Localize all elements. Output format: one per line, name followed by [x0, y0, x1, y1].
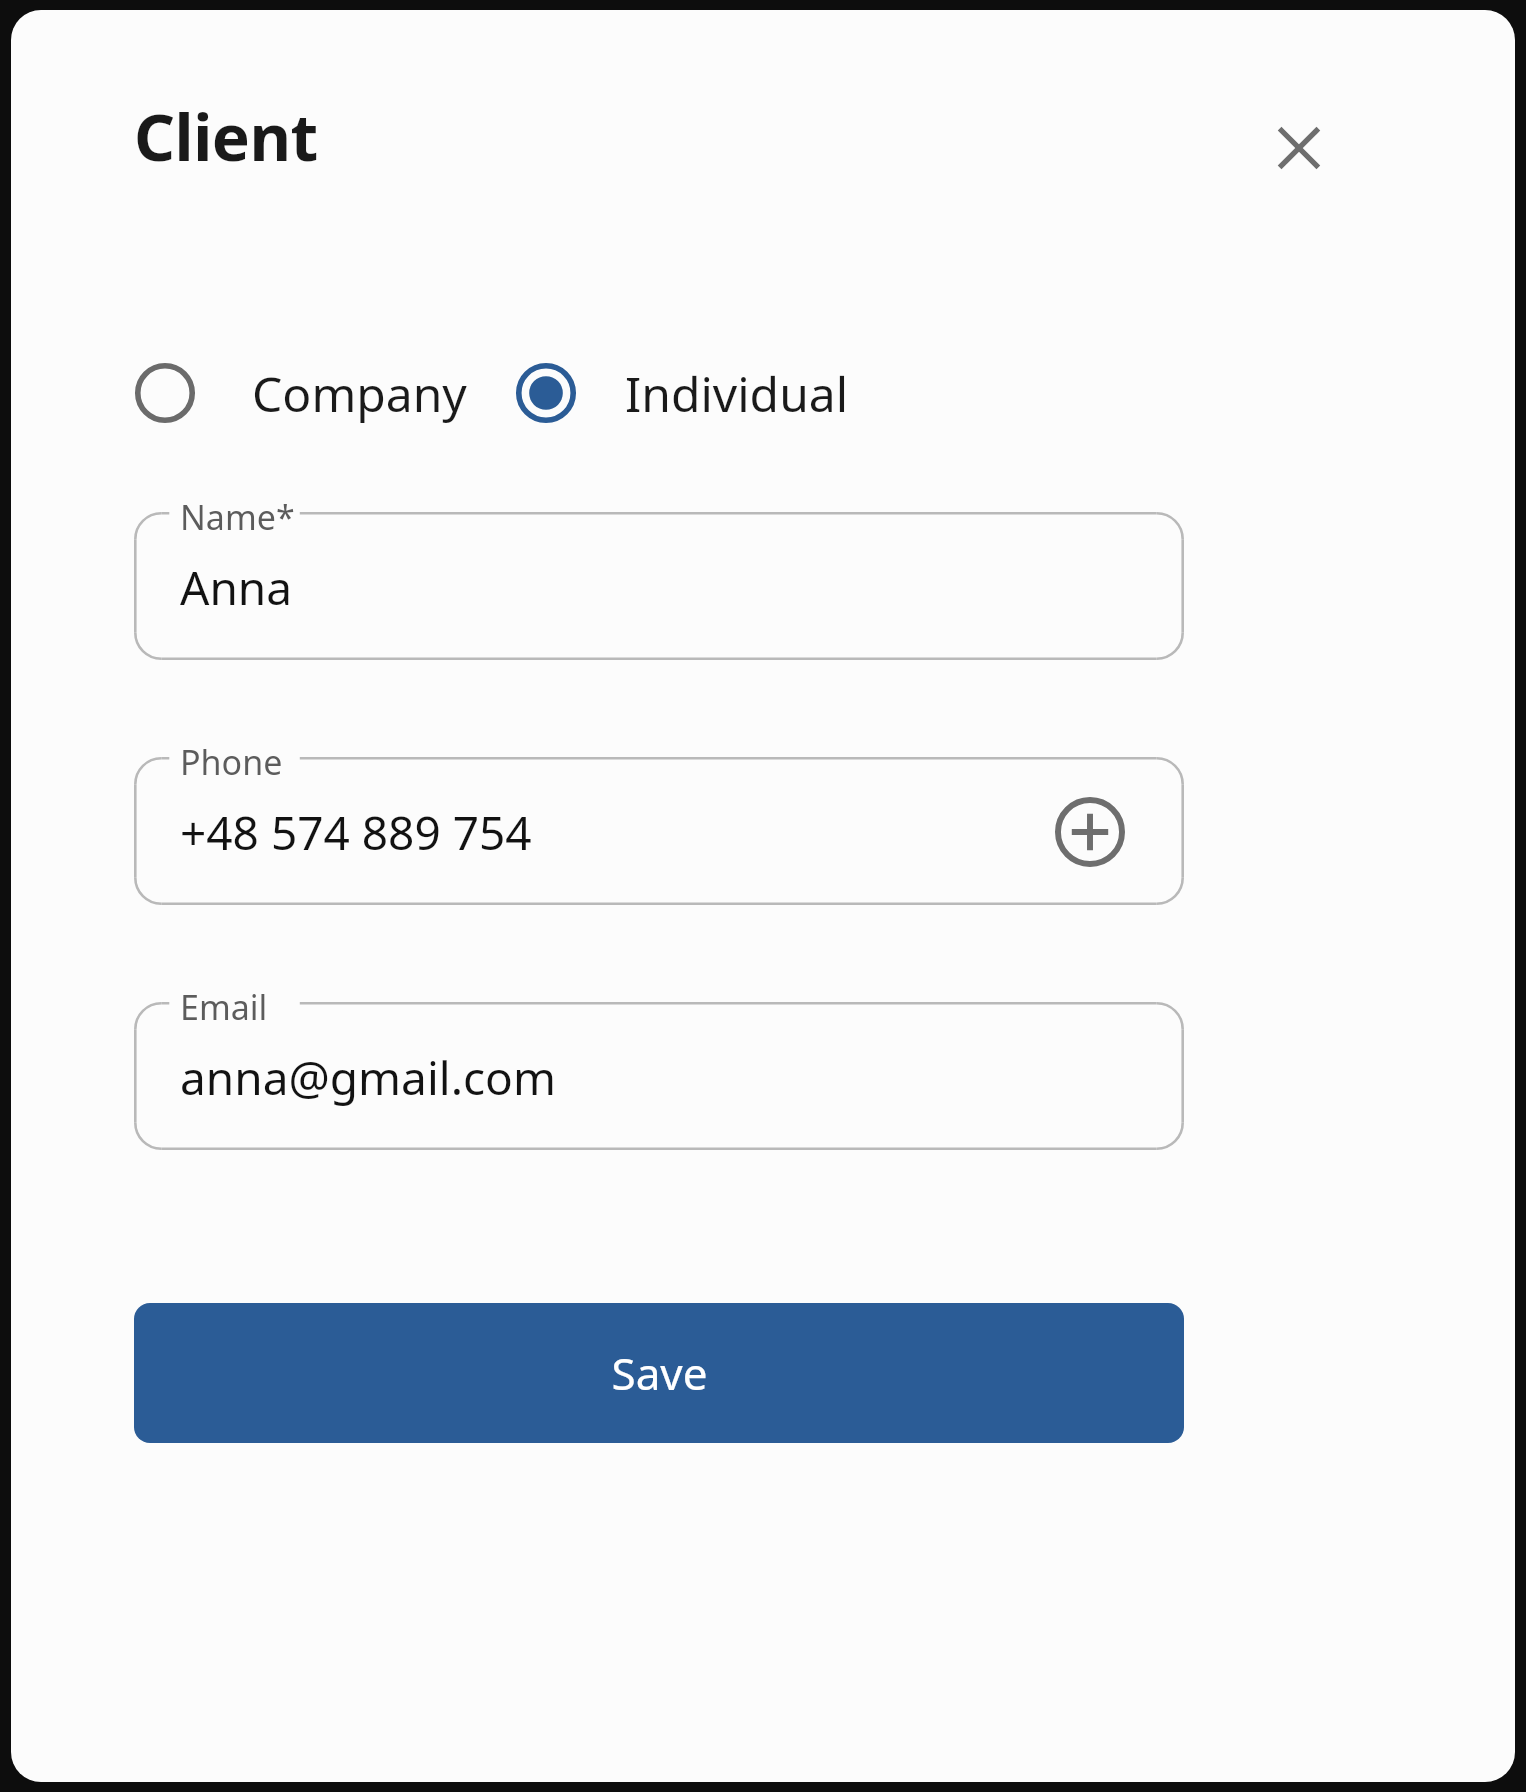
staticText: Save [611, 1343, 708, 1403]
button[interactable]: Add phone number [1048, 790, 1132, 874]
staticText: +48 574 889 754 [180, 801, 532, 864]
staticText: Individual [625, 361, 849, 426]
button[interactable]: Individual [513, 356, 849, 430]
staticText: Client [134, 93, 318, 180]
button[interactable]: Save [134, 1303, 1184, 1443]
staticText: anna@gmail.com [180, 1046, 556, 1109]
staticText: Company [252, 361, 467, 426]
staticText: Phone [180, 739, 283, 785]
button[interactable]: Email [134, 988, 1184, 1150]
button[interactable]: Company [132, 356, 467, 430]
staticText: Name* [180, 494, 295, 540]
button[interactable]: Close [1251, 100, 1347, 196]
staticText: Anna [180, 556, 293, 619]
button[interactable]: Name* [134, 498, 1184, 660]
button[interactable]: Phone [134, 743, 1184, 905]
staticText: Email [180, 984, 268, 1030]
